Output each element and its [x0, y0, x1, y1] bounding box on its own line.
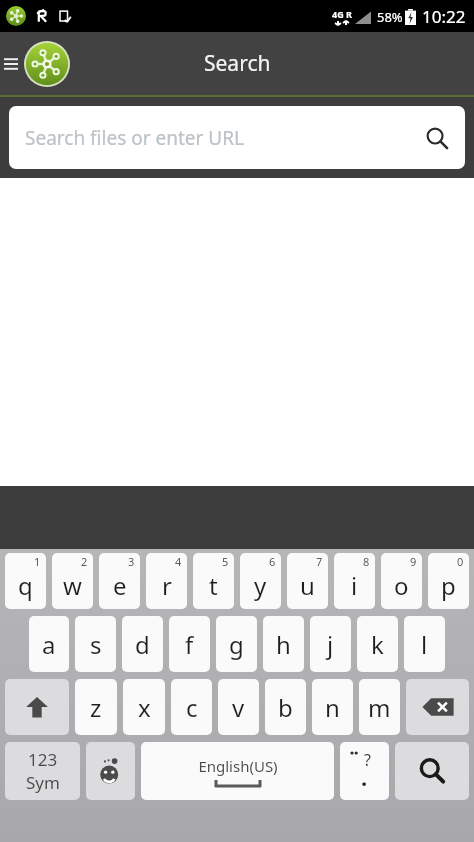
button[interactable]: s — [75, 616, 116, 672]
staticText: e — [113, 569, 127, 602]
button[interactable]: Emoji and settings — [86, 742, 135, 800]
button[interactable]: 2 — [52, 553, 93, 609]
staticText: 4 — [175, 554, 182, 569]
staticText: c — [186, 691, 198, 724]
button[interactable]: 6 — [240, 553, 281, 609]
staticText: 6 — [269, 554, 276, 569]
staticText: 8 — [363, 554, 370, 569]
button[interactable]: 8 — [334, 553, 375, 609]
staticText: b — [278, 691, 293, 724]
button[interactable]: l — [404, 616, 445, 672]
button[interactable]: 3 — [99, 553, 140, 609]
button[interactable]: ? — [340, 742, 389, 800]
button[interactable]: m — [359, 679, 400, 735]
button[interactable]: x — [123, 679, 165, 735]
staticText: 58% — [377, 8, 403, 26]
staticText: 3 — [128, 554, 135, 569]
staticText: 10:22 — [422, 5, 466, 28]
button[interactable]: z — [75, 679, 117, 735]
staticText: w — [63, 569, 82, 602]
button[interactable]: d — [122, 616, 163, 672]
button[interactable]: Open navigation menu — [0, 35, 76, 93]
staticText: ? — [364, 749, 371, 771]
staticText: t — [209, 569, 218, 602]
staticText: Sym — [26, 771, 60, 794]
staticText: 2 — [81, 554, 88, 569]
button[interactable]: n — [312, 679, 353, 735]
button[interactable]: f — [169, 616, 210, 672]
staticText: 9 — [410, 554, 417, 569]
staticText: a — [42, 628, 56, 661]
button[interactable]: 9 — [381, 553, 422, 609]
staticText: . — [361, 762, 368, 792]
staticText: 4G — [332, 8, 344, 20]
staticText: h — [276, 628, 291, 661]
staticText: z — [90, 691, 102, 724]
other: Search — [425, 126, 449, 150]
button[interactable]: v — [218, 679, 259, 735]
staticText: Search files or enter URL — [25, 125, 425, 151]
staticText: d — [135, 628, 150, 661]
staticText: 0 — [457, 554, 464, 569]
staticText: l — [421, 628, 428, 661]
staticText: p — [441, 569, 456, 602]
staticText: q — [18, 569, 33, 602]
button[interactable]: 7 — [287, 553, 328, 609]
staticText: i — [351, 569, 358, 602]
staticText: o — [394, 569, 409, 602]
button[interactable]: 5 — [193, 553, 234, 609]
staticText: k — [371, 628, 384, 661]
button[interactable]: a — [29, 616, 69, 672]
staticText: g — [229, 628, 244, 661]
button[interactable]: b — [265, 679, 306, 735]
button[interactable]: c — [171, 679, 212, 735]
staticText: 7 — [316, 554, 323, 569]
button[interactable]: k — [357, 616, 398, 672]
button[interactable]: g — [216, 616, 257, 672]
staticText: r — [162, 569, 172, 602]
staticText: x — [138, 691, 151, 724]
staticText: 5 — [222, 554, 229, 569]
staticText: m — [368, 691, 391, 724]
button[interactable]: j — [310, 616, 351, 672]
button[interactable]: Delete — [406, 679, 469, 735]
staticText: j — [327, 628, 334, 661]
staticText: Search — [204, 49, 271, 78]
staticText: y — [254, 569, 267, 602]
button[interactable]: 1 — [5, 553, 46, 609]
button[interactable]: 123 — [5, 742, 80, 800]
button[interactable]: 0 — [428, 553, 469, 609]
staticText: 123 — [28, 748, 58, 771]
button[interactable]: 4 — [146, 553, 187, 609]
staticText: 1 — [34, 554, 41, 569]
staticText: s — [90, 628, 102, 661]
staticText: u — [300, 569, 315, 602]
button[interactable]: Search files or enter URL — [9, 106, 465, 169]
button[interactable]: Shift — [5, 679, 69, 735]
staticText: R — [346, 8, 352, 20]
button[interactable]: h — [263, 616, 304, 672]
staticText: n — [325, 691, 340, 724]
button[interactable]: Search — [395, 742, 469, 800]
staticText: v — [232, 691, 245, 724]
button[interactable]: Space — [141, 742, 334, 800]
staticText: f — [185, 628, 194, 661]
staticText: English(US) — [198, 756, 278, 776]
